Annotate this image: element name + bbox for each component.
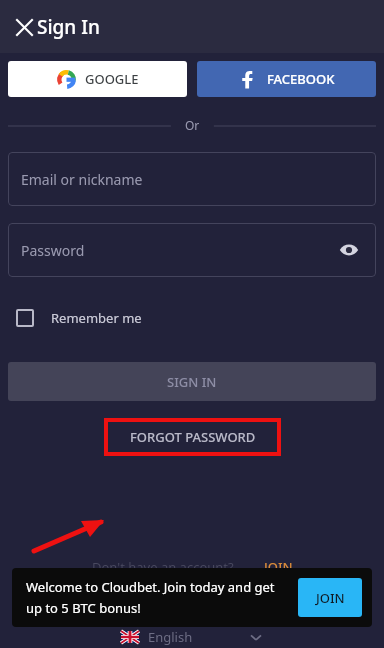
staticText: SIGN IN bbox=[167, 373, 217, 391]
button[interactable]: JOIN bbox=[298, 578, 362, 617]
staticText: up to 5 BTC bonus! bbox=[26, 599, 141, 617]
button[interactable]: Remember me bbox=[16, 302, 142, 334]
staticText: GOOGLE bbox=[85, 70, 139, 88]
button[interactable]: FORGOT PASSWORD bbox=[104, 418, 281, 456]
staticText: FACEBOOK bbox=[267, 70, 335, 88]
staticText: JOIN bbox=[316, 589, 345, 607]
button[interactable]: Close bbox=[4, 7, 44, 47]
button[interactable]: Show password bbox=[336, 237, 362, 263]
button[interactable]: FACEBOOK bbox=[197, 61, 376, 97]
staticText: Remember me bbox=[51, 309, 142, 327]
staticText: FORGOT PASSWORD bbox=[130, 428, 256, 446]
button[interactable]: SIGN IN bbox=[8, 362, 376, 401]
staticText: Don't have an account? bbox=[92, 558, 234, 576]
staticText: Or bbox=[185, 117, 200, 133]
button[interactable]: Password bbox=[8, 223, 376, 277]
button[interactable]: JOIN bbox=[264, 558, 293, 576]
other: Expand bbox=[249, 630, 263, 644]
staticText: Welcome to Cloudbet. Join today and get bbox=[26, 578, 275, 596]
staticText: Password bbox=[21, 241, 85, 260]
staticText: JOIN bbox=[264, 558, 293, 576]
staticText: English bbox=[148, 628, 193, 646]
staticText: Sign In bbox=[37, 14, 100, 40]
button[interactable]: GOOGLE bbox=[8, 61, 187, 97]
staticText: Email or nickname bbox=[21, 170, 143, 189]
button[interactable]: Email or nickname bbox=[8, 152, 376, 206]
